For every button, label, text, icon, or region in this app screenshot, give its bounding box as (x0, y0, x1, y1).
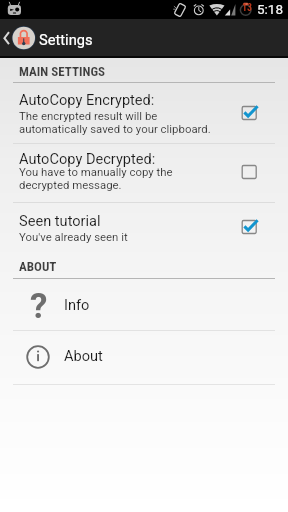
staticText: The encrypted result will be (19, 109, 158, 122)
staticText: ABOUT (19, 259, 57, 274)
button[interactable] (0, 203, 288, 250)
staticText: Seen tutorial (19, 212, 101, 229)
button[interactable] (0, 144, 288, 202)
staticText: automatically saved to your clipboard. (19, 122, 211, 135)
staticText: decrypted message. (19, 178, 122, 191)
staticText: Settings (39, 31, 93, 48)
staticText: You've already seen it (19, 230, 128, 243)
staticText: AutoCopy Decrypted: (19, 150, 156, 167)
staticText: AutoCopy Encrypted: (19, 91, 155, 108)
button[interactable]: Navigate up (0, 23, 12, 53)
button[interactable] (0, 279, 288, 330)
staticText: 5:18 (257, 1, 284, 17)
staticText: ? (30, 286, 48, 327)
staticText: Info (64, 296, 90, 313)
button[interactable] (0, 331, 288, 384)
staticText: 13 (242, 2, 253, 14)
staticText: About (64, 347, 103, 364)
button[interactable] (0, 84, 288, 143)
staticText: You have to manually copy the (19, 165, 173, 178)
staticText: MAIN SETTINGS (19, 64, 106, 79)
